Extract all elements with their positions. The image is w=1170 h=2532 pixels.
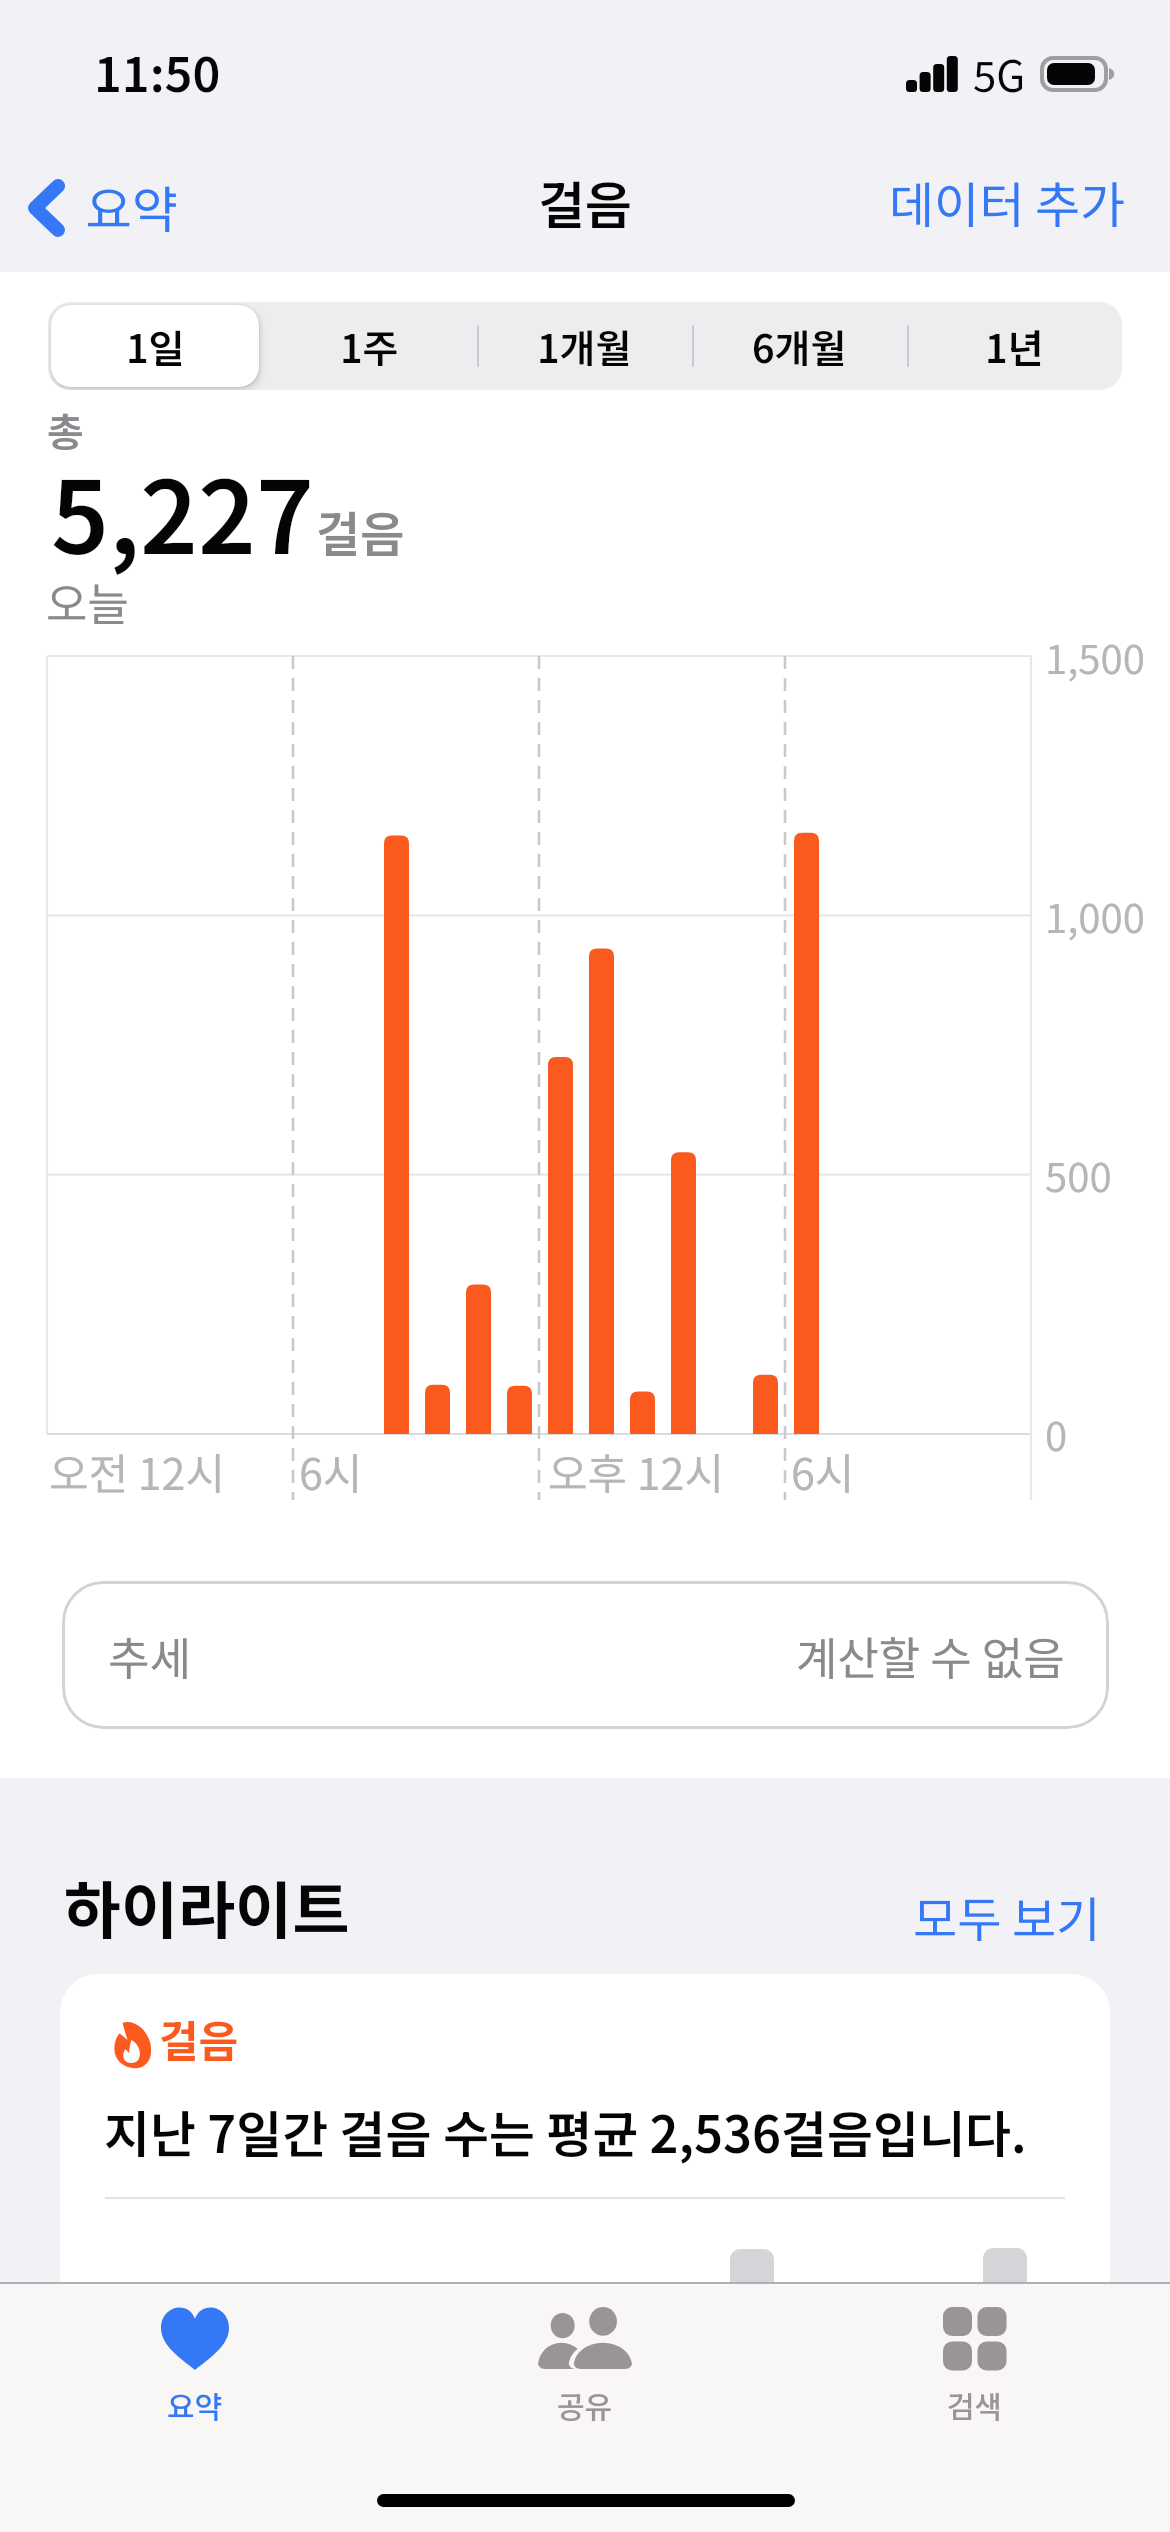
- staticText: 5G: [973, 43, 1026, 104]
- button[interactable]: 데이터 추가: [864, 151, 1151, 251]
- staticText: 데이터 추가: [889, 166, 1126, 237]
- staticText: 걸음: [0, 165, 1170, 239]
- staticText: 500: [1045, 1146, 1112, 1204]
- staticText: 요약: [167, 2383, 223, 2426]
- staticText: 1일: [126, 318, 185, 374]
- staticText: 공유: [557, 2383, 613, 2426]
- staticText: 추세: [108, 1623, 191, 1688]
- staticText: 0: [1045, 1405, 1068, 1463]
- button[interactable]: 걸음: [60, 1974, 1110, 2314]
- staticText: 걸음: [159, 2007, 239, 2069]
- button[interactable]: 1년: [907, 302, 1122, 390]
- staticText: 하이라이트: [64, 1861, 350, 1951]
- other: 공유: [538, 2307, 632, 2369]
- staticText: 총: [47, 401, 84, 459]
- staticText: 6개월: [752, 318, 847, 374]
- button[interactable]: 공유: [390, 2282, 780, 2452]
- staticText: 오늘: [46, 569, 129, 634]
- staticText: 11:50: [94, 36, 221, 106]
- button[interactable]: 1주: [262, 302, 477, 390]
- button[interactable]: 검색: [780, 2282, 1170, 2452]
- staticText: 요약: [86, 170, 178, 242]
- staticText: 6시: [299, 1440, 363, 1502]
- staticText: 1,500: [1045, 628, 1145, 686]
- button[interactable]: 요약: [13, 158, 198, 258]
- staticText: 1,000: [1045, 887, 1145, 945]
- staticText: 걸음: [316, 496, 405, 566]
- button[interactable]: 1개월: [477, 302, 692, 390]
- other: 요약: [161, 2306, 229, 2370]
- staticText: 1년: [985, 318, 1044, 374]
- button[interactable]: 요약: [0, 2282, 390, 2452]
- staticText: 모두 보기: [913, 1881, 1101, 1951]
- button[interactable]: 추세: [62, 1581, 1109, 1729]
- staticText: 오후 12시: [548, 1440, 725, 1502]
- button[interactable]: 1일: [48, 302, 262, 390]
- staticText: 오전 12시: [49, 1440, 226, 1502]
- staticText: 6시: [791, 1440, 855, 1502]
- staticText: 계산할 수 없음: [796, 1623, 1065, 1688]
- other: 검색: [943, 2307, 1007, 2370]
- staticText: 지난 7일간 걸음 수는 평균 2,536걸음입니다.: [104, 2095, 1027, 2167]
- staticText: 검색: [947, 2383, 1003, 2426]
- staticText: 1주: [340, 318, 399, 374]
- staticText: 1개월: [537, 318, 632, 374]
- button[interactable]: 6개월: [692, 302, 907, 390]
- staticText: 5,227: [51, 438, 315, 583]
- button[interactable]: 모두 보기: [903, 1871, 1111, 1961]
